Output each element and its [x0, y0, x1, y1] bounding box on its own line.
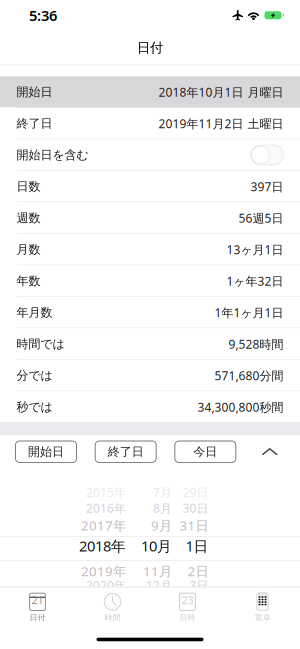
button[interactable]: 分では: [0, 360, 300, 391]
button[interactable]: 年月数: [0, 297, 300, 328]
staticText: 2015年: [86, 484, 126, 500]
button[interactable]: 日数: [0, 171, 300, 202]
button[interactable]: 21: [0, 593, 75, 622]
staticText: 日数: [16, 179, 40, 194]
staticText: 13ヶ月1日: [226, 241, 283, 257]
staticText: 日時: [179, 613, 195, 622]
staticText: 分では: [16, 368, 52, 383]
button[interactable]: 今日: [175, 441, 236, 462]
staticText: 12月: [146, 577, 172, 593]
button[interactable]: 終了日: [0, 108, 300, 139]
staticText: 2日: [188, 562, 209, 580]
staticText: 終了日: [16, 116, 52, 131]
staticText: 時間では: [16, 337, 64, 351]
staticText: 2016年: [86, 500, 126, 516]
staticText: 29日: [183, 484, 209, 500]
staticText: 2018年10月1日 月曜日: [158, 84, 283, 100]
staticText: 23: [181, 593, 193, 607]
staticText: 5:36: [29, 5, 57, 25]
staticText: 週数: [16, 211, 40, 225]
staticText: 年月数: [16, 305, 52, 320]
button[interactable]: 週数: [0, 202, 300, 234]
staticText: 月数: [16, 242, 40, 257]
staticText: 開始日: [16, 85, 52, 99]
staticText: 10月: [141, 536, 172, 556]
button[interactable]: 時間では: [0, 328, 300, 360]
staticText: 7月: [153, 484, 172, 500]
staticText: 11月: [143, 562, 172, 580]
staticText: 3日: [190, 577, 209, 593]
button[interactable]: 時間: [75, 593, 150, 622]
staticText: 1ヶ年32日: [226, 273, 283, 289]
button[interactable]: 開始日を含む: [0, 139, 300, 171]
staticText: 30日: [183, 500, 209, 516]
staticText: 571,680分間: [214, 367, 283, 383]
staticText: 電卓: [254, 613, 270, 622]
staticText: 日付: [29, 613, 45, 622]
staticText: 1日: [186, 536, 209, 556]
staticText: 34,300,800秒間: [197, 399, 283, 415]
button[interactable]: 開始日: [0, 76, 300, 108]
staticText: 2019年11月2日 土曜日: [158, 115, 283, 131]
button[interactable]: 電卓: [225, 593, 300, 622]
button[interactable]: 23: [150, 593, 225, 622]
staticText: 21: [31, 593, 43, 607]
button[interactable]: 年数: [0, 265, 300, 297]
staticText: 2018年: [79, 536, 126, 556]
button[interactable]: 月数: [0, 234, 300, 265]
staticText: 今日: [193, 444, 217, 459]
staticText: 開始日: [28, 444, 64, 459]
staticText: 2017年: [81, 516, 126, 534]
staticText: 時間: [104, 613, 120, 622]
staticText: 56週5日: [238, 210, 283, 226]
staticText: 9,528時間: [228, 336, 283, 352]
staticText: 9月: [151, 516, 172, 534]
staticText: 開始日を含む: [16, 148, 88, 162]
staticText: 8月: [153, 500, 172, 516]
button[interactable]: Collapse picker: [254, 437, 285, 466]
staticText: 日付: [137, 40, 163, 56]
button[interactable]: 秒では: [0, 391, 300, 423]
staticText: 2019年: [81, 562, 126, 580]
staticText: 397日: [250, 178, 283, 194]
button[interactable]: 開始日: [15, 441, 76, 462]
staticText: 2020年: [86, 577, 126, 593]
staticText: 31日: [180, 516, 209, 534]
staticText: 秒では: [16, 400, 52, 414]
staticText: 1年1ヶ月1日: [214, 304, 283, 320]
staticText: 年数: [16, 274, 40, 288]
staticText: 終了日: [108, 444, 144, 459]
button[interactable]: 終了日: [95, 441, 156, 462]
